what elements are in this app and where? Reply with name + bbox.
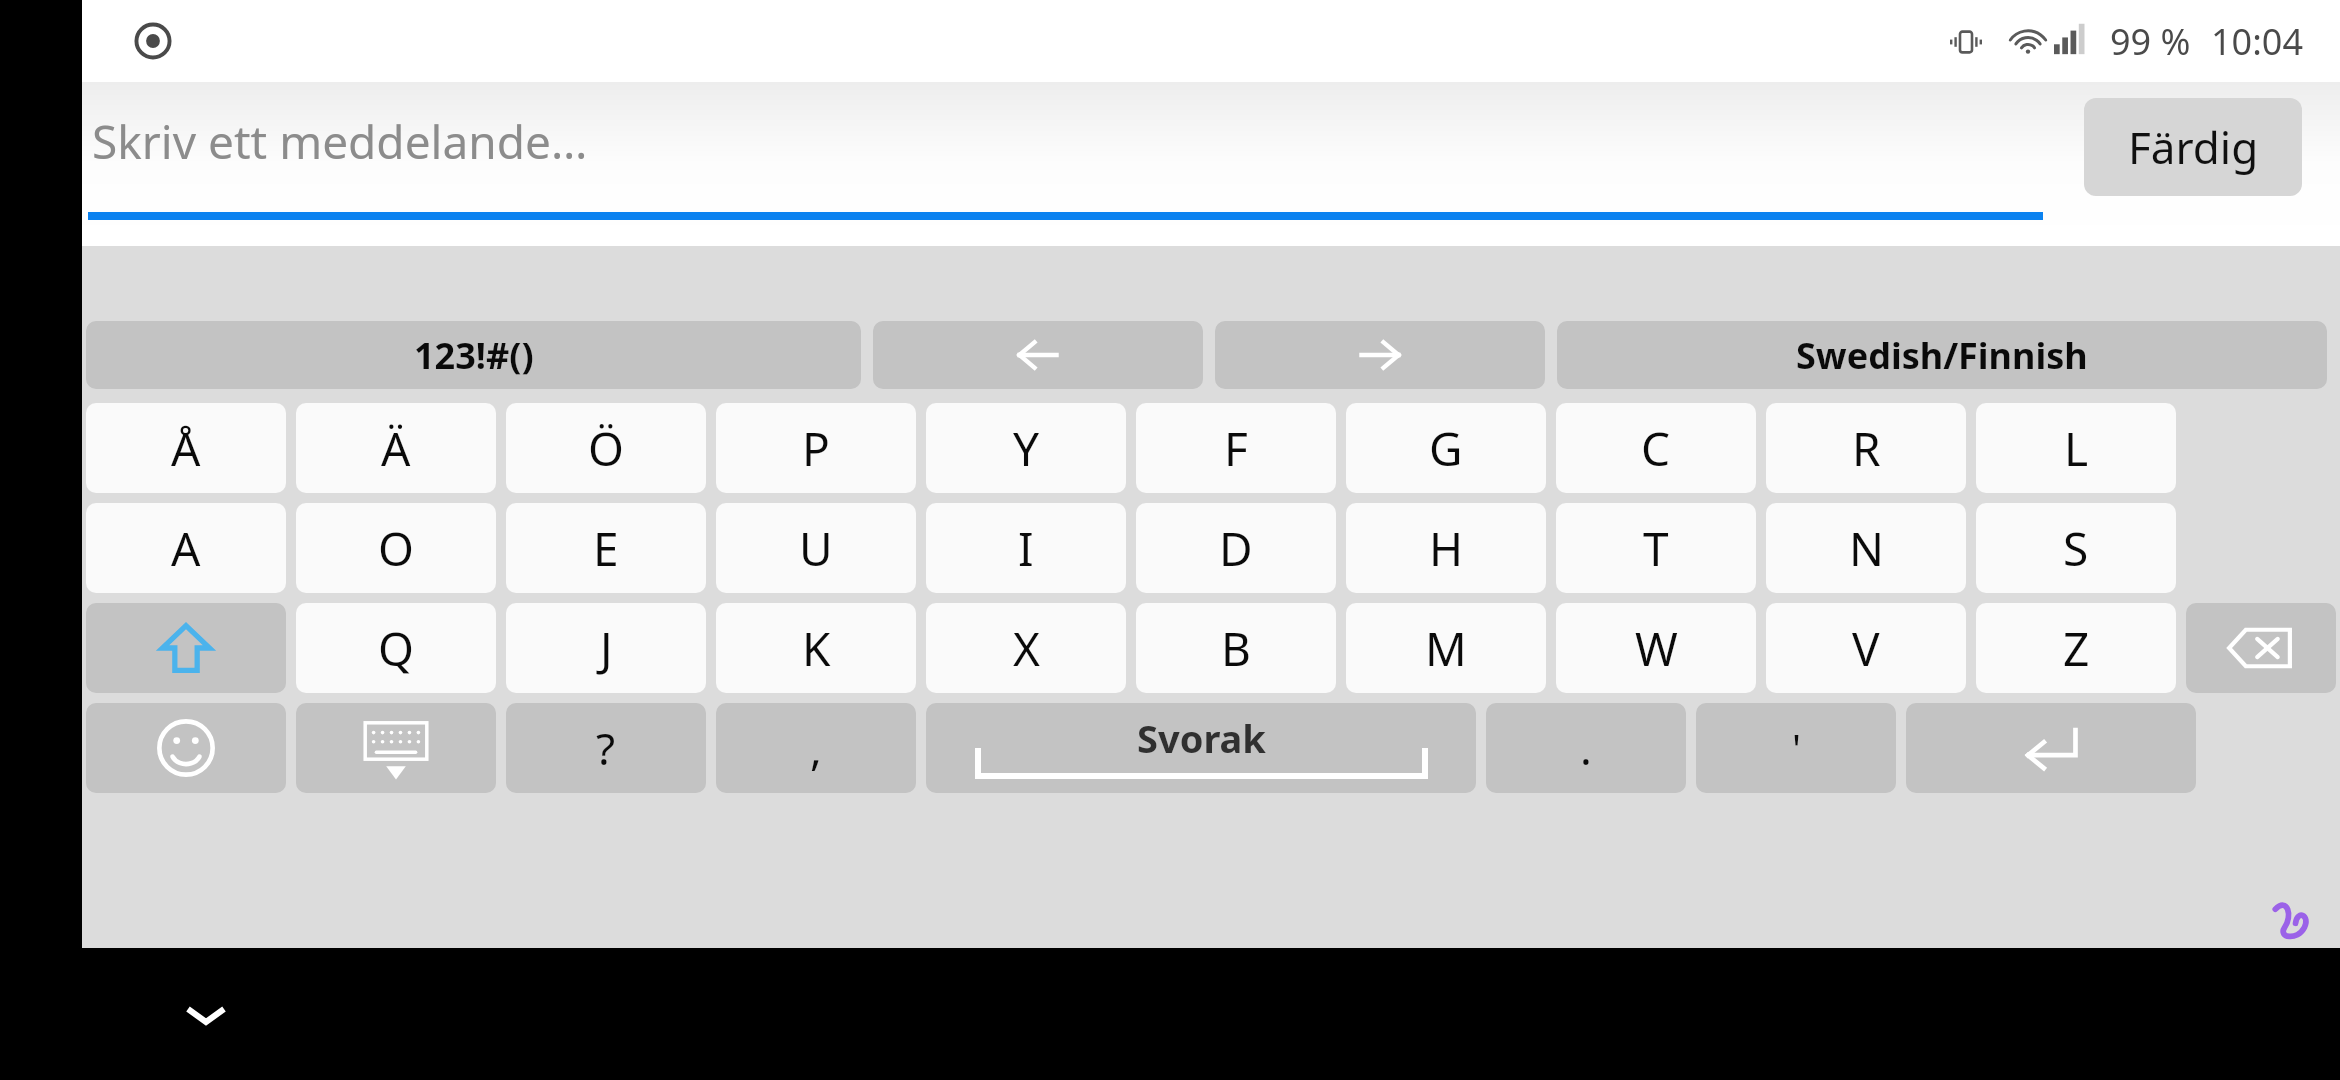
button[interactable]: ?	[506, 703, 706, 793]
button[interactable]: J	[506, 603, 706, 693]
staticText: '	[1792, 721, 1801, 775]
staticText: W	[1635, 617, 1678, 680]
staticText: H	[1429, 517, 1464, 580]
staticText: P	[802, 417, 830, 480]
button[interactable]: Right	[1215, 321, 1545, 389]
button[interactable]: Y	[926, 403, 1126, 493]
staticText: K	[802, 617, 831, 680]
button[interactable]: Shift	[86, 603, 286, 693]
button[interactable]: T	[1556, 503, 1756, 593]
button[interactable]: Färdig	[2084, 98, 2302, 196]
staticText: X	[1013, 617, 1040, 680]
button[interactable]: G	[1346, 403, 1546, 493]
button[interactable]: Å	[86, 403, 286, 493]
staticText: S	[2063, 517, 2089, 580]
button[interactable]: Space	[926, 703, 1476, 793]
staticText: Q	[378, 617, 414, 680]
staticText: Z	[2063, 617, 2090, 680]
button[interactable]: M	[1346, 603, 1546, 693]
staticText: Å	[171, 417, 201, 480]
staticText: M	[1425, 617, 1467, 680]
button[interactable]: W	[1556, 603, 1756, 693]
button[interactable]: I	[926, 503, 1126, 593]
button[interactable]: Skriv ett meddelande…	[92, 110, 588, 173]
button[interactable]: F	[1136, 403, 1336, 493]
button[interactable]: Q	[296, 603, 496, 693]
staticText: Swedish/Finnish	[1796, 331, 2088, 380]
button[interactable]: E	[506, 503, 706, 593]
button[interactable]: Switch keyboard	[296, 703, 496, 793]
staticText: 10:04	[2211, 17, 2304, 66]
button[interactable]: Enter	[1906, 703, 2196, 793]
button[interactable]: V	[1766, 603, 1966, 693]
staticText: B	[1221, 617, 1251, 680]
button[interactable]: .	[1486, 703, 1686, 793]
staticText: ?	[596, 718, 616, 778]
staticText: T	[1643, 517, 1669, 580]
staticText: Ö	[588, 417, 624, 480]
button[interactable]: Ö	[506, 403, 706, 493]
staticText: ,	[810, 718, 822, 778]
button[interactable]: A	[86, 503, 286, 593]
staticText: Färdig	[2128, 117, 2259, 177]
button[interactable]: S	[1976, 503, 2176, 593]
staticText: C	[1641, 417, 1671, 480]
staticText: G	[1429, 417, 1463, 480]
staticText: 99 %	[2110, 17, 2191, 66]
button[interactable]: P	[716, 403, 916, 493]
staticText: Y	[1013, 417, 1040, 480]
staticText: V	[1852, 617, 1880, 680]
button[interactable]: N	[1766, 503, 1966, 593]
button[interactable]: D	[1136, 503, 1336, 593]
staticText: 123!#()	[414, 331, 534, 380]
button[interactable]: O	[296, 503, 496, 593]
button[interactable]: Emoji	[86, 703, 286, 793]
button[interactable]: Recording	[130, 18, 176, 64]
staticText: O	[378, 517, 414, 580]
button[interactable]: Swedish/Finnish	[1557, 321, 2327, 389]
button[interactable]: C	[1556, 403, 1756, 493]
staticText: A	[171, 517, 201, 580]
staticText: F	[1224, 417, 1248, 480]
button[interactable]: U	[716, 503, 916, 593]
button[interactable]: K	[716, 603, 916, 693]
staticText: J	[600, 617, 613, 680]
staticText: N	[1849, 517, 1884, 580]
button[interactable]: H	[1346, 503, 1546, 593]
button[interactable]: Ä	[296, 403, 496, 493]
button[interactable]: L	[1976, 403, 2176, 493]
button[interactable]: Left	[873, 321, 1203, 389]
staticText: Ä	[381, 417, 411, 480]
staticText: D	[1219, 517, 1253, 580]
button[interactable]: '	[1696, 703, 1896, 793]
button[interactable]: R	[1766, 403, 1966, 493]
button[interactable]: ,	[716, 703, 916, 793]
button[interactable]: Hide keyboard	[146, 954, 266, 1074]
staticText: R	[1852, 417, 1881, 480]
staticText: I	[1018, 517, 1034, 580]
staticText: .	[1580, 718, 1592, 778]
button[interactable]: X	[926, 603, 1126, 693]
button[interactable]: Z	[1976, 603, 2176, 693]
button[interactable]: B	[1136, 603, 1336, 693]
staticText: L	[2064, 417, 2089, 480]
staticText: E	[593, 517, 619, 580]
staticText: U	[799, 517, 833, 580]
button[interactable]: Backspace	[2186, 603, 2336, 693]
button[interactable]: 123!#()	[86, 321, 861, 389]
staticText: Svorak	[1137, 712, 1266, 764]
